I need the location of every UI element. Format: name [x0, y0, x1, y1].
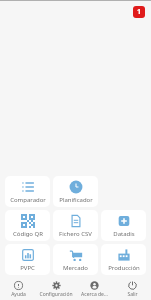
staticText: Mercado	[63, 264, 88, 272]
staticText: Ayuda	[11, 291, 26, 298]
staticText: PVPC	[20, 264, 35, 272]
button[interactable]: Producción	[101, 244, 146, 275]
button[interactable]: Ayuda	[0, 278, 37, 300]
staticText: Acerca de...	[81, 291, 108, 298]
staticText: Salir	[127, 291, 138, 298]
button[interactable]: Datadis	[101, 210, 146, 241]
button[interactable]: Mercado	[53, 244, 98, 275]
staticText: Producción	[108, 264, 140, 272]
staticText: Planificador	[59, 196, 93, 204]
button[interactable]: PVPC	[5, 244, 50, 275]
staticText: 1	[137, 7, 142, 17]
button[interactable]: Salir	[113, 278, 151, 300]
button[interactable]: Código QR	[5, 210, 50, 241]
button[interactable]: Comparador	[5, 176, 50, 207]
button[interactable]: Fichero CSV	[53, 210, 98, 241]
staticText: Configuración	[39, 291, 73, 298]
button[interactable]: Acerca de...	[75, 278, 113, 300]
button[interactable]: Notificaciones	[133, 6, 145, 18]
staticText: Fichero CSV	[59, 230, 92, 238]
button[interactable]: Configuración	[37, 278, 75, 300]
staticText: Datadis	[113, 230, 135, 238]
staticText: Código QR	[13, 230, 43, 238]
button[interactable]: Planificador	[53, 176, 98, 207]
staticText: Comparador	[10, 196, 46, 204]
